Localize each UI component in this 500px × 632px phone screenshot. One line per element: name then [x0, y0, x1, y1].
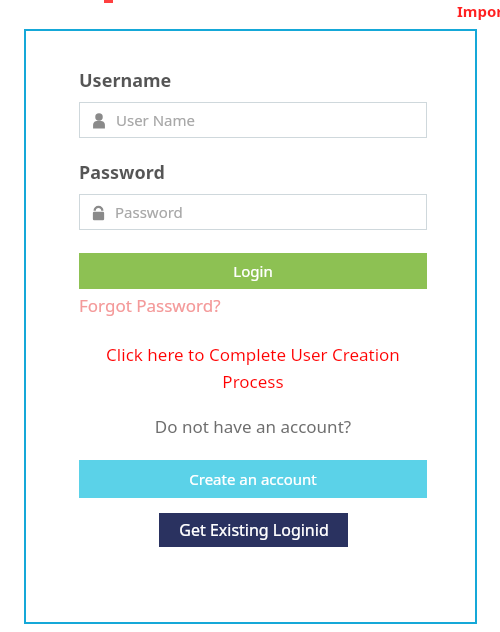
- button[interactable]: Create an account: [79, 460, 427, 498]
- staticText: Password: [115, 202, 183, 222]
- button[interactable]: Get Existing Loginid: [159, 513, 348, 547]
- button[interactable]: Password: [79, 194, 427, 230]
- button[interactable]: Click here to Complete User Creation Pro…: [79, 343, 427, 393]
- staticText: Forgot Password?: [79, 294, 221, 317]
- staticText: Do not have an account?: [79, 415, 427, 438]
- staticText: Username: [79, 68, 172, 93]
- staticText: Login: [233, 261, 273, 281]
- button[interactable]: Forgot Password?: [79, 294, 221, 317]
- staticText: Get Existing Loginid: [179, 519, 329, 541]
- staticText: Create an account: [189, 469, 317, 489]
- button[interactable]: Import: [457, 1, 500, 21]
- staticText: User Name: [116, 110, 196, 130]
- button[interactable]: User Name: [79, 102, 427, 138]
- button[interactable]: Login: [79, 253, 427, 289]
- staticText: Import: [457, 1, 500, 21]
- staticText: Password: [79, 160, 165, 185]
- staticText: Click here to Complete User Creation Pro…: [79, 343, 427, 393]
